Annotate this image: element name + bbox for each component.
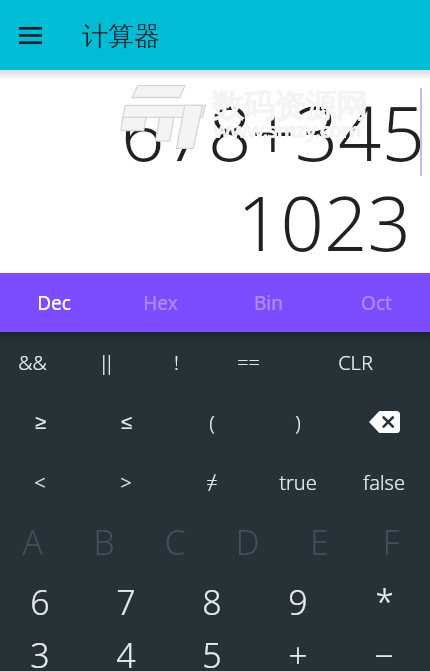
button[interactable]: > (83, 452, 169, 512)
button[interactable]: Oct (322, 273, 430, 332)
staticText: > (120, 469, 132, 496)
button[interactable]: ≠ (169, 452, 255, 512)
staticText: Hex (143, 290, 178, 316)
staticText: 4 (116, 632, 136, 671)
staticText: < (34, 469, 46, 496)
button[interactable]: 3 (0, 632, 83, 671)
button[interactable]: E (283, 512, 355, 572)
button[interactable]: 5 (169, 632, 255, 671)
staticText: ( (209, 409, 215, 436)
staticText: 计算器 (82, 20, 160, 53)
button[interactable]: Hex (107, 273, 214, 332)
button[interactable]: CLR (284, 332, 427, 392)
staticText: Bin (254, 290, 283, 316)
staticText: ≥ (35, 411, 46, 433)
button[interactable]: true (255, 452, 341, 512)
button[interactable]: D (211, 512, 283, 572)
staticText: * (375, 579, 394, 625)
button[interactable]: A (0, 512, 68, 572)
staticText: 5 (202, 632, 222, 671)
staticText: && (18, 349, 47, 376)
button[interactable]: ) (255, 392, 341, 452)
staticText: A (22, 519, 43, 565)
button[interactable]: 6 (0, 572, 83, 632)
staticText: 3 (30, 632, 50, 671)
staticText: + (288, 632, 308, 671)
staticText: 7 (116, 579, 136, 625)
staticText: 1023 (237, 170, 411, 274)
staticText: F (382, 519, 400, 565)
button[interactable]: || (68, 332, 140, 392)
staticText: C (164, 519, 186, 565)
staticText: true (279, 469, 317, 496)
staticText: 8 (202, 579, 222, 625)
button[interactable]: ( (169, 392, 255, 452)
button[interactable]: ≥ (0, 392, 83, 452)
staticText: == (237, 349, 260, 376)
button[interactable]: 8 (169, 572, 255, 632)
staticText: B (93, 519, 115, 565)
staticText: Oct (361, 290, 392, 316)
button[interactable]: Backspace (341, 392, 427, 452)
button[interactable]: B (68, 512, 139, 572)
staticText: 9 (288, 579, 308, 625)
staticText: www.smzy.com (213, 116, 361, 145)
staticText: || (98, 349, 110, 376)
staticText: false (363, 469, 405, 496)
button[interactable]: F (355, 512, 427, 572)
button[interactable]: == (212, 332, 284, 392)
staticText: ≤ (121, 411, 132, 433)
button[interactable]: C (139, 512, 211, 572)
button[interactable]: Bin (214, 273, 322, 332)
staticText: ) (295, 409, 301, 436)
staticText: CLR (338, 349, 373, 376)
button[interactable]: Open navigation menu (8, 13, 52, 57)
button[interactable]: − (341, 632, 427, 671)
button[interactable]: ! (140, 332, 212, 392)
staticText: 数码资源网 (212, 86, 367, 126)
staticText: ≠ (206, 469, 218, 496)
button[interactable]: + (255, 632, 341, 671)
staticText: 678+345 (121, 80, 425, 184)
staticText: D (235, 519, 260, 565)
button[interactable]: Dec (0, 273, 107, 332)
staticText: Dec (37, 290, 71, 316)
staticText: − (374, 632, 394, 671)
button[interactable]: false (341, 452, 427, 512)
button[interactable]: 7 (83, 572, 169, 632)
button[interactable]: ≤ (83, 392, 169, 452)
button[interactable]: 4 (83, 632, 169, 671)
staticText: 6 (30, 579, 50, 625)
button[interactable]: * (341, 572, 427, 632)
button[interactable]: 9 (255, 572, 341, 632)
button[interactable]: && (0, 332, 68, 392)
button[interactable]: < (0, 452, 83, 512)
staticText: ! (174, 349, 179, 376)
staticText: E (310, 519, 329, 565)
